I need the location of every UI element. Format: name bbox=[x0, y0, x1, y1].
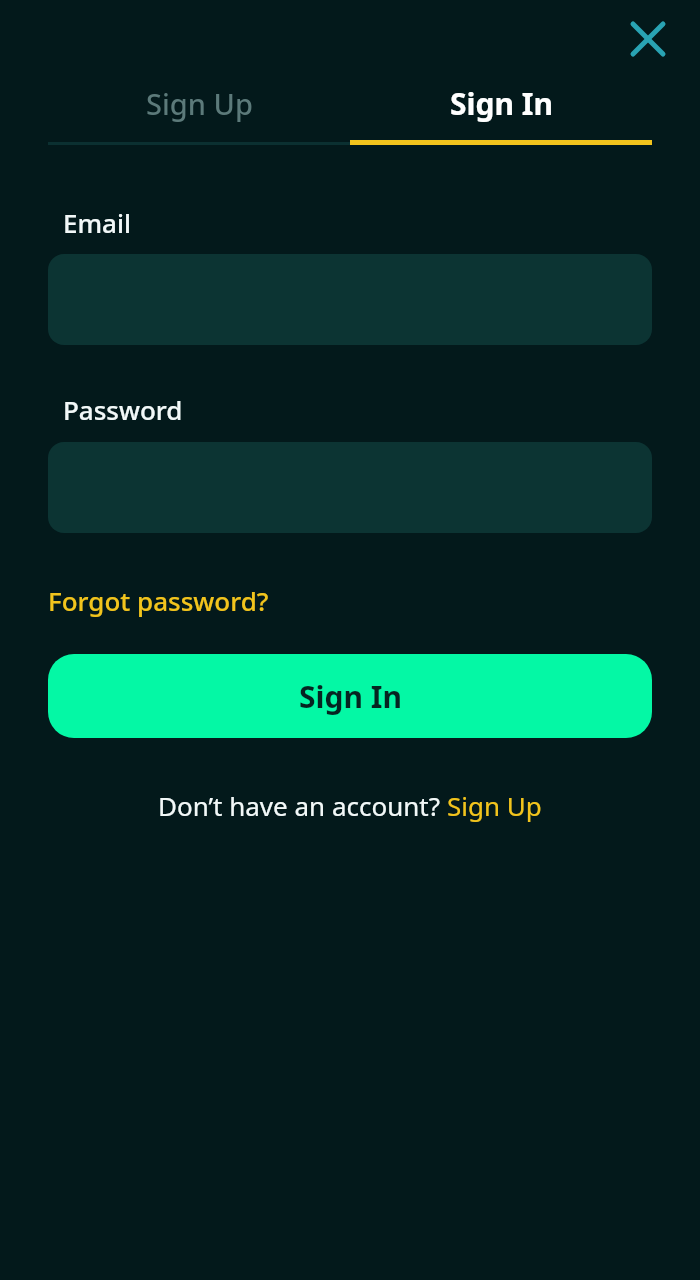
staticText: Don’t have an account? bbox=[158, 788, 447, 823]
button[interactable]: Sign In bbox=[48, 654, 652, 738]
button[interactable]: Forgot password? bbox=[48, 583, 269, 618]
staticText: Email bbox=[63, 205, 132, 240]
staticText: Password bbox=[63, 392, 183, 427]
button[interactable]: Sign Up bbox=[48, 78, 350, 128]
staticText: Sign In bbox=[450, 83, 553, 124]
staticText: Sign Up bbox=[146, 84, 253, 123]
button[interactable]: Sign Up bbox=[447, 788, 542, 823]
staticText: Sign In bbox=[299, 676, 402, 717]
button[interactable] bbox=[624, 15, 672, 63]
button[interactable]: Sign In bbox=[350, 78, 652, 128]
